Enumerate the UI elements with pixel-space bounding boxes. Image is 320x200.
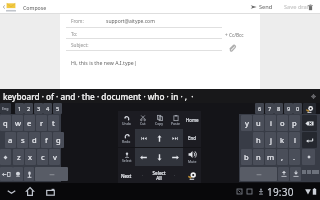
button[interactable]: v [49, 149, 60, 165]
staticText: t [52, 118, 55, 128]
button[interactable]: Voice input [24, 167, 34, 181]
button[interactable]: Backspace [302, 115, 317, 131]
button[interactable]: Next [118, 166, 135, 185]
button[interactable]: 2 [24, 103, 33, 114]
button[interactable]: e [24, 115, 35, 131]
button[interactable]: Select [118, 148, 135, 166]
button[interactable]: 8 [274, 103, 283, 114]
button[interactable]: Undo [118, 111, 135, 129]
button[interactable]: t [48, 115, 59, 131]
staticText: Subject: [71, 42, 89, 48]
button[interactable]: + Cc/Bcc [225, 32, 244, 38]
button[interactable]: l [289, 132, 300, 148]
button[interactable]: Up [151, 129, 167, 147]
button[interactable]: Emoji [13, 167, 23, 181]
button[interactable]: Discard [305, 0, 316, 14]
button[interactable]: c [37, 149, 48, 165]
staticText: v [53, 152, 57, 162]
button[interactable]: Down [151, 148, 167, 166]
button[interactable]: a [5, 132, 16, 148]
button[interactable]: Eng [0, 103, 11, 114]
button[interactable]: w [12, 115, 23, 131]
button[interactable]: A.I.type menu [183, 166, 201, 185]
button[interactable]: Cut [135, 111, 151, 129]
button[interactable]: Space [240, 167, 277, 181]
button[interactable] [151, 166, 167, 185]
button[interactable]: s [17, 132, 28, 148]
button[interactable]: Redo [118, 129, 135, 147]
button[interactable]: 7 [265, 103, 274, 114]
button[interactable]: A.I.type settings [303, 103, 316, 114]
button[interactable]: , [277, 149, 288, 165]
button[interactable]: 4 [43, 103, 52, 114]
button[interactable]: Attach file [226, 42, 238, 54]
button[interactable]: o [277, 115, 288, 131]
staticText: w [15, 118, 21, 128]
button[interactable]: Navigate up [0, 0, 7, 14]
button[interactable]: Move down [290, 167, 301, 181]
staticText: Mute [188, 159, 197, 164]
button[interactable]: h [253, 132, 264, 148]
button[interactable]: Keyboard layout [0, 167, 13, 181]
button[interactable]: 1 [15, 103, 24, 114]
button[interactable]: b [241, 149, 252, 165]
button[interactable]: 0 [293, 103, 302, 114]
staticText: + Cc/Bcc [225, 32, 244, 38]
button[interactable]: i [265, 115, 276, 131]
button[interactable]: · [135, 166, 151, 185]
button[interactable]: r [36, 115, 47, 131]
button[interactable]: Space [35, 167, 68, 181]
button[interactable]: Shift [302, 149, 315, 165]
button[interactable]: Previous word [135, 129, 151, 147]
button[interactable]: Home [24, 183, 36, 200]
button[interactable]: j [265, 132, 276, 148]
button[interactable]: Shift [0, 149, 11, 165]
button[interactable]: k [277, 132, 288, 148]
button[interactable]: z [13, 149, 24, 165]
staticText: o [280, 118, 285, 128]
button[interactable]: Send [250, 0, 273, 14]
staticText: · [174, 172, 176, 179]
button[interactable]: q [0, 115, 11, 131]
button[interactable]: u [253, 115, 264, 131]
button[interactable]: End [183, 129, 201, 147]
button[interactable]: m [265, 149, 276, 165]
button[interactable]: Paste [167, 111, 183, 129]
button[interactable]: Suggestions settings [308, 89, 319, 103]
button[interactable]: f [41, 132, 52, 148]
staticText: Paste [171, 121, 180, 126]
staticText: Next [121, 173, 132, 179]
button[interactable]: Hide keyboard [5, 183, 17, 200]
button[interactable]: Save draft [284, 0, 311, 14]
staticText: c [41, 152, 45, 162]
button[interactable]: y [241, 115, 252, 131]
button[interactable]: p [289, 115, 300, 131]
staticText: k [280, 135, 285, 145]
staticText: r [40, 118, 44, 128]
button[interactable]: 3 [34, 103, 43, 114]
button[interactable]: x [25, 149, 36, 165]
button[interactable]: 5 [53, 103, 62, 114]
button[interactable]: Mute [183, 148, 201, 166]
button[interactable]: g [53, 132, 64, 148]
button[interactable]: Recent apps [44, 183, 56, 200]
button[interactable]: Move up [278, 167, 289, 181]
button[interactable]: Enter [302, 132, 317, 148]
button[interactable]: 9 [284, 103, 293, 114]
button[interactable]: d [29, 132, 40, 148]
button[interactable]: · [167, 166, 183, 185]
button[interactable]: Right [167, 148, 183, 166]
staticText: h [256, 135, 261, 145]
button[interactable]: 6 [255, 103, 264, 114]
button[interactable]: Left [135, 148, 151, 166]
button[interactable]: Next word [167, 129, 183, 147]
staticText: . [293, 152, 296, 162]
button[interactable]: Compose [23, 0, 47, 14]
button[interactable]: . [289, 149, 300, 165]
button[interactable]: Home [183, 111, 201, 129]
button[interactable]: Copy [151, 111, 167, 129]
button[interactable]: n [253, 149, 264, 165]
